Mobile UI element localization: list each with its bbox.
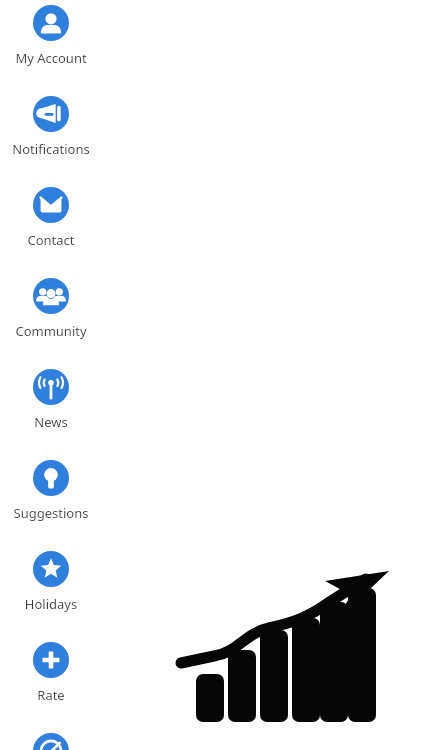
- button[interactable]: Rate: [0, 642, 102, 712]
- button[interactable]: Community: [0, 278, 102, 348]
- button[interactable]: Suggestions: [0, 460, 102, 530]
- button[interactable]: My Account: [0, 5, 102, 75]
- staticText: Holidays: [0, 595, 102, 613]
- button[interactable]: Contact: [0, 187, 102, 257]
- staticText: News: [0, 413, 102, 431]
- button[interactable]: Speed: [0, 733, 102, 750]
- other: Notifications: [33, 96, 69, 132]
- button[interactable]: Holidays: [0, 551, 102, 621]
- other: My Account: [33, 5, 69, 41]
- other: Speed: [33, 733, 69, 750]
- button[interactable]: Notifications: [0, 96, 102, 166]
- other: Community: [33, 278, 69, 314]
- other: News: [33, 369, 69, 405]
- other: Suggestions: [33, 460, 69, 496]
- staticText: Community: [0, 322, 102, 340]
- staticText: My Account: [0, 49, 102, 67]
- staticText: Rate: [0, 686, 102, 704]
- staticText: Suggestions: [0, 504, 102, 522]
- other: Growth chart: [172, 560, 394, 730]
- staticText: Notifications: [0, 140, 102, 158]
- other: Holidays: [33, 551, 69, 587]
- other: Rate: [33, 642, 69, 678]
- button[interactable]: News: [0, 369, 102, 439]
- other: Contact: [33, 187, 69, 223]
- staticText: Contact: [0, 231, 102, 249]
